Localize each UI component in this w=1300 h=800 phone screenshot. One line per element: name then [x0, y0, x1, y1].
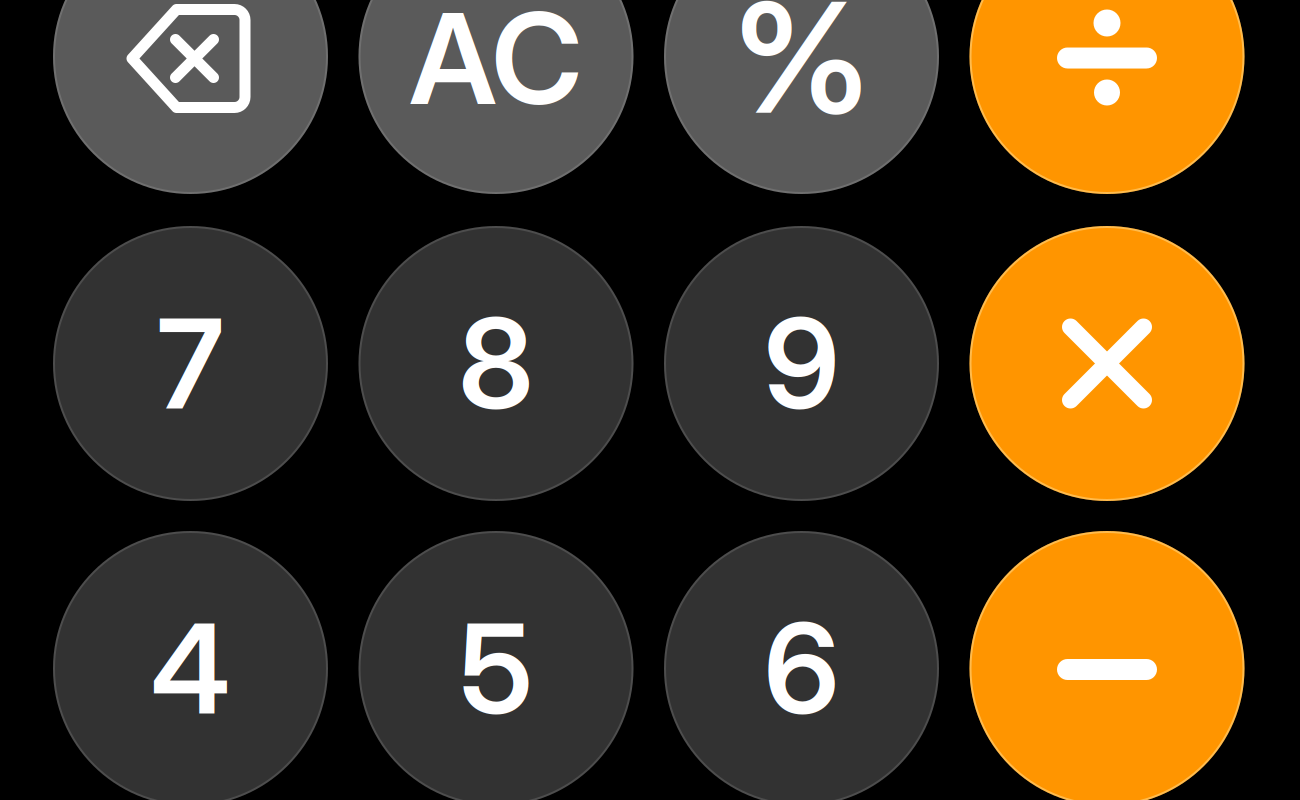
- button[interactable]: Delete: [53, 0, 328, 194]
- button[interactable]: 5: [358, 531, 633, 800]
- staticText: 6: [764, 593, 839, 743]
- staticText: %: [732, 0, 870, 149]
- button[interactable]: Multiply: [969, 226, 1244, 501]
- button[interactable]: Percent: [664, 0, 939, 194]
- staticText: 5: [459, 593, 532, 743]
- staticText: 9: [764, 288, 839, 438]
- staticText: 4: [150, 593, 230, 743]
- button[interactable]: Minus: [969, 531, 1244, 800]
- button[interactable]: 4: [53, 531, 328, 800]
- button[interactable]: Divide: [969, 0, 1244, 194]
- button[interactable]: 7: [53, 226, 328, 501]
- staticText: AC: [409, 0, 582, 134]
- button[interactable]: All clear: [358, 0, 633, 194]
- staticText: 7: [157, 288, 224, 438]
- button[interactable]: 8: [358, 226, 633, 501]
- staticText: 8: [458, 288, 533, 438]
- button[interactable]: 6: [664, 531, 939, 800]
- button[interactable]: 9: [664, 226, 939, 501]
